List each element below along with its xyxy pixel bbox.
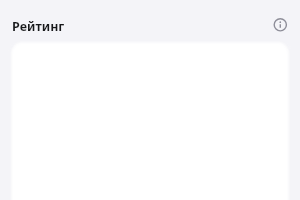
staticText: Рейтинг	[12, 18, 65, 35]
button[interactable]: Информация	[269, 14, 292, 37]
